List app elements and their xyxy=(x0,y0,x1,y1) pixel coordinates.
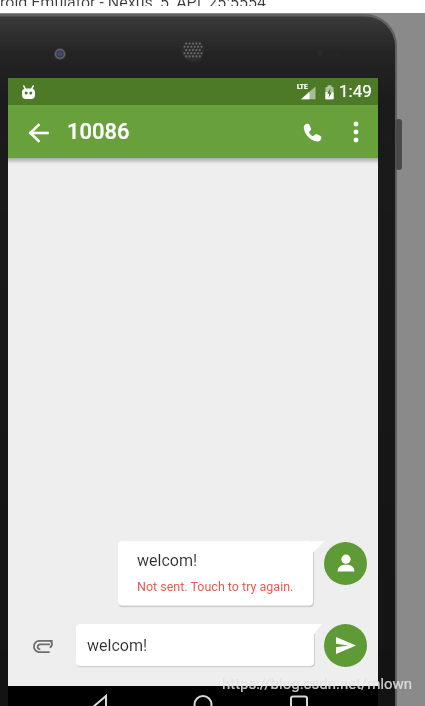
staticText: welcom! xyxy=(87,636,148,655)
button[interactable]: welcom! xyxy=(76,624,322,666)
staticText: 10086 xyxy=(67,119,130,145)
button[interactable] xyxy=(324,542,367,585)
staticText: LTE xyxy=(297,83,308,91)
button[interactable] xyxy=(341,117,371,147)
button[interactable] xyxy=(183,686,223,706)
button[interactable] xyxy=(279,686,319,706)
staticText: welcom! xyxy=(137,551,198,570)
staticText: 1:49 xyxy=(339,81,372,101)
button[interactable] xyxy=(324,624,367,667)
button[interactable] xyxy=(23,633,64,659)
button[interactable] xyxy=(24,118,54,148)
button[interactable] xyxy=(80,686,120,706)
button[interactable] xyxy=(297,117,327,147)
button[interactable]: welcom! xyxy=(118,541,327,606)
staticText: roid Emulator - Nexus_5_API_25:5554 xyxy=(0,0,267,6)
staticText: https://blog.csdn.net/mlown xyxy=(222,675,413,693)
staticText: Not sent. Touch to try again. xyxy=(137,579,294,594)
